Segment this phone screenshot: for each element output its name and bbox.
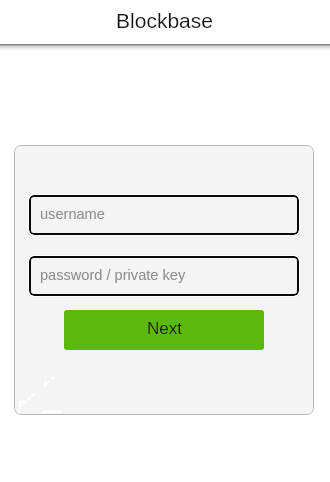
staticText: password / private key: [40, 267, 186, 283]
staticText: Next: [147, 319, 182, 338]
button[interactable]: password / private key: [29, 256, 299, 296]
staticText: Blockbase: [116, 9, 213, 32]
button[interactable]: username: [29, 195, 299, 235]
button[interactable]: Next: [64, 310, 264, 350]
staticText: username: [40, 206, 105, 222]
